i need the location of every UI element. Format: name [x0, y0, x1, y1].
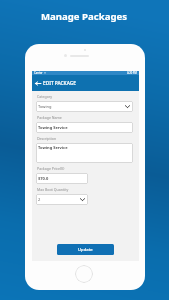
button[interactable]: Towing Service	[36, 122, 133, 133]
button[interactable]: Towing	[36, 101, 133, 112]
staticText: Package Name	[37, 115, 62, 120]
staticText: Towing Service	[38, 145, 68, 150]
staticText: Towing	[38, 104, 52, 109]
staticText: Update	[78, 247, 93, 253]
staticText: Carrier	[34, 71, 43, 75]
staticText: EDIT PACKAGE	[43, 80, 76, 87]
button[interactable]: 2	[36, 194, 88, 205]
staticText: 2	[38, 197, 41, 202]
staticText: Package Price($)	[37, 166, 65, 171]
staticText: Manage Packages	[41, 10, 128, 23]
staticText: Description	[37, 136, 57, 141]
staticText: Category	[37, 94, 53, 99]
button[interactable]: $70.0	[36, 173, 88, 184]
staticText: $70.0	[38, 176, 49, 181]
staticText: Towing Service	[38, 125, 68, 130]
staticText: Max Boot Quantity	[37, 187, 69, 192]
button[interactable]: Home	[75, 265, 93, 283]
button[interactable]: Back	[34, 79, 41, 88]
button[interactable]: Towing Service	[36, 143, 133, 163]
staticText: 4:20 PM	[127, 71, 137, 75]
button[interactable]: Update	[57, 244, 114, 255]
